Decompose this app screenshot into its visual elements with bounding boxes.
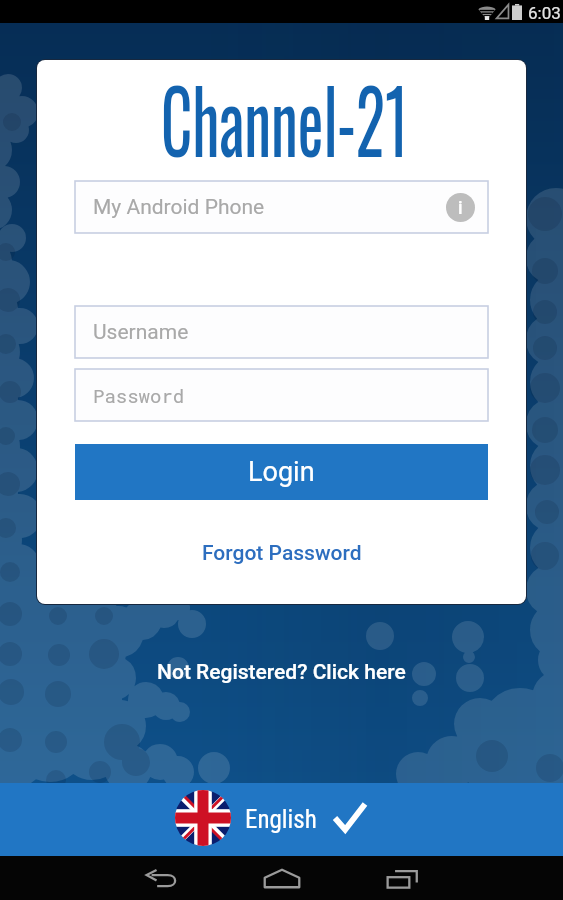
staticText: Forgot Password	[202, 541, 362, 566]
button[interactable]: Recent apps	[380, 856, 428, 900]
button[interactable]: My Android Phone	[75, 181, 488, 233]
staticText: Username	[93, 320, 189, 345]
button[interactable]: Info	[446, 193, 475, 222]
staticText: My Android Phone	[93, 195, 265, 220]
staticText: English	[245, 805, 317, 834]
staticText: Password	[93, 383, 185, 408]
button[interactable]: Forgot Password	[192, 536, 372, 571]
button[interactable]: Home	[258, 856, 306, 900]
staticText: Login	[248, 456, 315, 488]
button[interactable]: Username	[75, 306, 488, 358]
button[interactable]: Back	[138, 856, 186, 900]
staticText: Not Registered? Click here	[157, 660, 406, 685]
button[interactable]: English language selected	[0, 783, 563, 856]
button[interactable]: Not Registered? Click here	[145, 652, 418, 693]
staticText: i	[458, 197, 463, 218]
staticText: Channel-21	[161, 60, 408, 174]
staticText: 6:03	[528, 3, 561, 23]
button[interactable]: Password	[75, 369, 488, 421]
button[interactable]: Login	[75, 444, 488, 500]
